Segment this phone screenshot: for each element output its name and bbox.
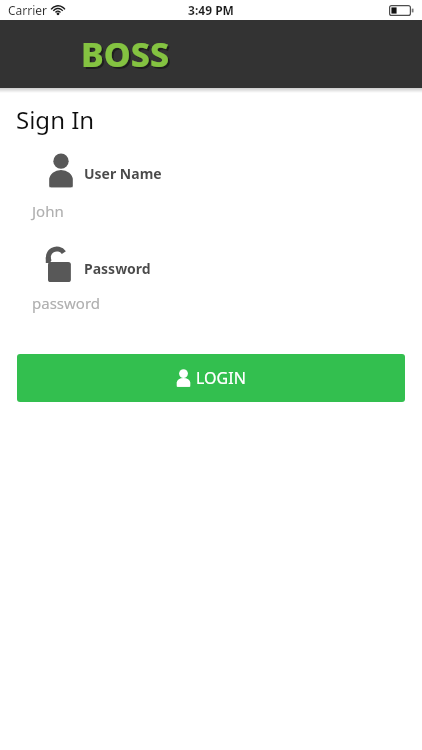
staticText: BOSS — [83, 33, 172, 79]
other: User — [48, 152, 74, 188]
staticText: Password — [84, 259, 151, 278]
button[interactable]: password — [0, 290, 422, 316]
staticText: 3:49 PM — [188, 2, 234, 18]
button[interactable]: LOGIN — [17, 354, 405, 402]
staticText: John — [32, 201, 64, 221]
other: Password lock — [48, 242, 74, 282]
button[interactable]: John — [0, 198, 422, 224]
staticText: Carrier — [8, 2, 48, 18]
staticText: LOGIN — [196, 367, 246, 389]
staticText: Sign In — [16, 103, 95, 136]
staticText: User Name — [84, 164, 162, 183]
staticText: password — [32, 293, 100, 313]
staticText: BOSS — [81, 31, 170, 77]
